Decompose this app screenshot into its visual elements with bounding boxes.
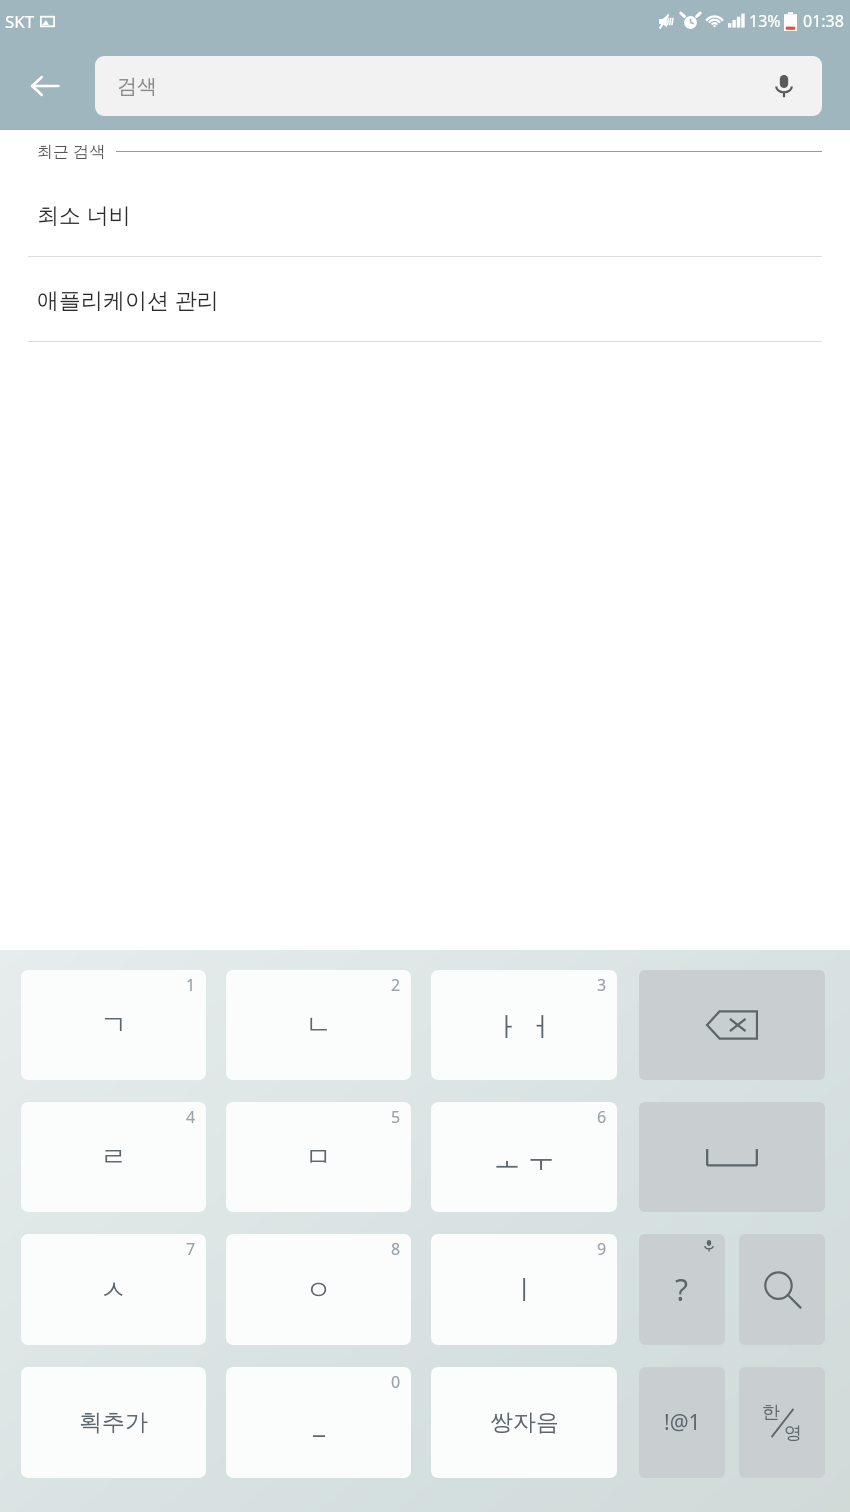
staticText: 5 — [391, 1106, 401, 1128]
staticText: 9 — [597, 1238, 607, 1260]
staticText: ㅣ — [511, 1273, 538, 1307]
button[interactable]: 7 — [21, 1234, 206, 1345]
button[interactable]: Space — [639, 1102, 825, 1212]
staticText: 1 — [186, 974, 196, 996]
button[interactable]: 0 — [226, 1367, 411, 1478]
button[interactable]: 최소 너비 — [0, 172, 850, 257]
staticText: ㄹ — [100, 1140, 127, 1174]
button[interactable]: 4 — [21, 1102, 206, 1212]
button[interactable]: Voice search — [762, 64, 806, 108]
staticText: 한 — [762, 1401, 780, 1424]
staticText: 2 — [391, 974, 401, 996]
button[interactable]: 9 — [431, 1234, 617, 1345]
staticText: 13% — [749, 10, 781, 32]
button[interactable]: 5 — [226, 1102, 411, 1212]
button[interactable]: Search — [739, 1234, 825, 1345]
staticText: 최소 너비 — [37, 199, 131, 229]
staticText: SKT — [5, 10, 35, 33]
staticText: 4 — [186, 1106, 196, 1128]
staticText: 검색 — [117, 74, 157, 99]
staticText: ㅇ — [305, 1273, 332, 1307]
staticText: 8 — [391, 1238, 401, 1260]
staticText: !@1 — [664, 1408, 701, 1437]
button[interactable]: 6 — [431, 1102, 617, 1212]
staticText: 0 — [391, 1371, 401, 1393]
staticText: 쌍자음 — [490, 1408, 559, 1437]
staticText: 최근 검색 — [37, 140, 106, 162]
staticText: ㅗ ㅜ — [493, 1139, 555, 1176]
staticText: 3 — [597, 974, 607, 996]
button[interactable]: 애플리케이션 관리 — [0, 257, 850, 342]
button[interactable]: Back — [12, 53, 78, 119]
button[interactable]: Backspace — [639, 970, 825, 1080]
staticText: ㅅ — [100, 1273, 127, 1307]
button[interactable]: Language — [739, 1367, 825, 1478]
staticText: ㄴ — [305, 1008, 332, 1042]
staticText: ? — [675, 1269, 689, 1310]
button[interactable]: 8 — [226, 1234, 411, 1345]
button[interactable]: 검색 — [95, 56, 822, 116]
staticText: 7 — [186, 1238, 196, 1260]
staticText: 애플리케이션 관리 — [37, 284, 219, 314]
button[interactable]: 3 — [431, 970, 617, 1080]
staticText: 6 — [597, 1106, 607, 1128]
staticText: 영 — [784, 1422, 802, 1445]
button[interactable]: 2 — [226, 970, 411, 1080]
staticText: ㅏ ㅓ — [493, 1007, 555, 1044]
button[interactable]: Symbols — [639, 1367, 725, 1478]
staticText: ㅁ — [305, 1140, 332, 1174]
staticText: ㄱ — [100, 1008, 127, 1042]
button[interactable]: Question mark — [639, 1234, 725, 1345]
staticText: _ — [313, 1404, 325, 1441]
button[interactable]: 1 — [21, 970, 206, 1080]
staticText: 획추가 — [79, 1408, 148, 1437]
button[interactable]: 획추가 — [21, 1367, 206, 1478]
button[interactable]: 쌍자음 — [431, 1367, 617, 1478]
staticText: 01:38 — [803, 10, 844, 32]
